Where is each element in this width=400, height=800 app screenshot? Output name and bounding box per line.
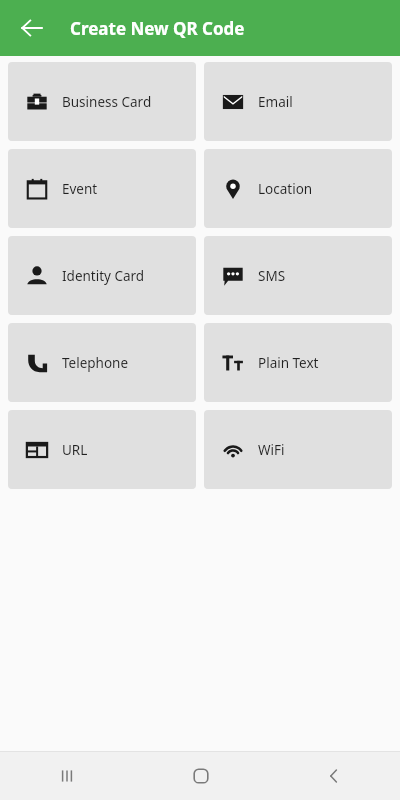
staticText: Plain Text [258, 354, 319, 372]
staticText: Business Card [62, 93, 152, 111]
staticText: WiFi [258, 441, 285, 459]
button[interactable]: Back [267, 752, 400, 800]
button[interactable]: SMS [204, 236, 392, 315]
staticText: SMS [258, 267, 286, 285]
button[interactable]: Home [134, 752, 267, 800]
button[interactable]: Email [204, 62, 392, 141]
button[interactable]: Location [204, 149, 392, 228]
button[interactable]: WiFi [204, 410, 392, 489]
button[interactable]: Telephone [8, 323, 196, 402]
staticText: Create New QR Code [70, 17, 245, 40]
button[interactable]: Back [10, 6, 54, 50]
staticText: URL [62, 441, 88, 459]
staticText: Location [258, 180, 313, 198]
button[interactable]: Recents [0, 752, 134, 800]
staticText: Event [62, 180, 98, 198]
button[interactable]: URL [8, 410, 196, 489]
staticText: Telephone [62, 354, 129, 372]
button[interactable]: Plain Text [204, 323, 392, 402]
staticText: Identity Card [62, 267, 145, 285]
button[interactable]: Business Card [8, 62, 196, 141]
staticText: Email [258, 93, 293, 111]
button[interactable]: Event [8, 149, 196, 228]
button[interactable]: Identity Card [8, 236, 196, 315]
